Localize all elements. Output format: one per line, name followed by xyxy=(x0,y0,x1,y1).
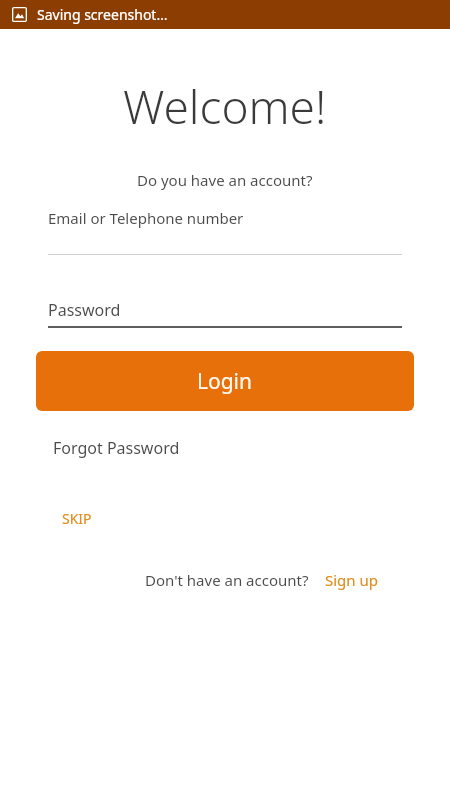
staticText: Email or Telephone number xyxy=(48,208,244,228)
staticText: Saving screenshot… xyxy=(37,5,168,24)
staticText: Sign up xyxy=(325,570,378,590)
staticText: Welcome! xyxy=(123,75,327,138)
staticText: Do you have an account? xyxy=(137,170,313,190)
staticText: Don't have an account? xyxy=(145,570,309,590)
button[interactable]: Forgot Password xyxy=(0,435,194,461)
staticText: SKIP xyxy=(62,509,92,528)
staticText: Forgot Password xyxy=(53,437,180,459)
staticText: Password xyxy=(48,299,121,321)
button[interactable]: Sign up xyxy=(323,568,380,592)
other: Screenshot saved xyxy=(12,7,27,22)
button[interactable]: Email or Telephone number xyxy=(0,208,450,255)
staticText: Login xyxy=(197,367,253,396)
button[interactable]: Login xyxy=(36,351,414,411)
button[interactable]: Password xyxy=(0,299,450,328)
button[interactable]: SKIP xyxy=(0,507,106,530)
